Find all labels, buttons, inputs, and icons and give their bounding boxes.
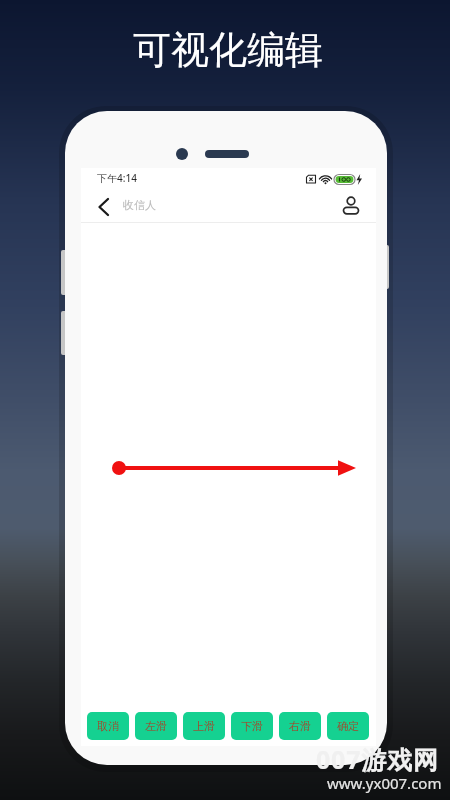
button[interactable]: 上滑	[183, 712, 225, 740]
button[interactable]	[339, 194, 363, 218]
staticText: 收信人	[123, 198, 156, 212]
staticText: 取消	[97, 719, 119, 733]
button[interactable]: 确定	[327, 712, 369, 740]
staticText: 左滑	[145, 719, 167, 733]
staticText: 可视化编辑	[133, 26, 323, 74]
staticText: 确定	[337, 719, 359, 733]
button[interactable]: 左滑	[135, 712, 177, 740]
staticText: 下午4:14	[97, 171, 137, 185]
button[interactable]: 下滑	[231, 712, 273, 740]
button[interactable]	[91, 194, 117, 220]
staticText: www.yx007.com	[327, 773, 442, 793]
staticText: 上滑	[193, 719, 215, 733]
staticText: 下滑	[241, 719, 263, 733]
button[interactable]: 右滑	[279, 712, 321, 740]
staticText: 右滑	[289, 719, 311, 733]
staticText: 007游戏网	[316, 742, 439, 776]
button[interactable]: 取消	[87, 712, 129, 740]
